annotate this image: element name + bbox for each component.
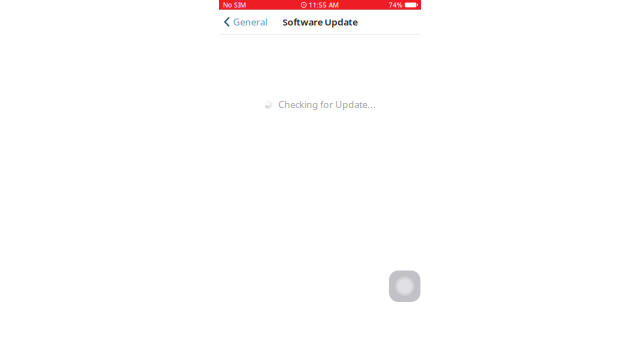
staticText: Software Update xyxy=(282,16,357,28)
button[interactable]: General xyxy=(219,10,275,34)
button[interactable]: AssistiveTouch xyxy=(388,270,421,303)
staticText: No SIM xyxy=(223,0,246,9)
staticText: 11:55 AM xyxy=(309,0,339,9)
staticText: 74% xyxy=(389,0,403,9)
staticText: General xyxy=(233,16,267,28)
staticText: Checking for Update... xyxy=(278,98,376,111)
